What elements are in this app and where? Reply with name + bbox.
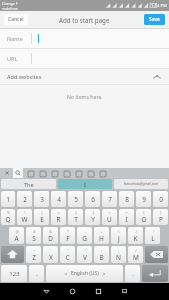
button[interactable]: English (US) bbox=[46, 265, 123, 282]
staticText: I bbox=[125, 215, 128, 224]
button[interactable]: Close toolbar bbox=[3, 169, 11, 177]
button[interactable]: Hide keyboard bbox=[111, 283, 137, 300]
staticText: @ bbox=[15, 229, 19, 234]
button[interactable]: I bbox=[58, 179, 112, 189]
button[interactable]: Emoji bbox=[62, 169, 71, 178]
staticText: Q bbox=[5, 215, 11, 224]
staticText: O bbox=[141, 215, 147, 224]
button[interactable]: 8 bbox=[119, 191, 134, 207]
button[interactable]: Name bbox=[0, 29, 169, 48]
button[interactable]: + bbox=[94, 227, 109, 244]
button[interactable]: ` bbox=[43, 246, 58, 263]
button[interactable]: 1 bbox=[1, 191, 15, 207]
staticText: 0 bbox=[159, 195, 163, 204]
button[interactable]: 4 bbox=[51, 191, 66, 207]
button[interactable]: ( bbox=[111, 227, 126, 244]
button[interactable]: fatoumata@gmail.com bbox=[114, 179, 168, 189]
button[interactable]: ' bbox=[77, 246, 92, 263]
staticText: ! bbox=[153, 229, 154, 234]
staticText: ] bbox=[92, 210, 94, 215]
staticText: Cancel bbox=[8, 16, 24, 23]
staticText: Z bbox=[32, 253, 36, 262]
button[interactable]: " bbox=[60, 246, 75, 263]
staticText: ` bbox=[50, 248, 52, 253]
button[interactable]: Settings bbox=[98, 169, 107, 178]
staticText: \ bbox=[24, 210, 26, 215]
button[interactable]: Home bbox=[59, 283, 85, 300]
staticText: " bbox=[67, 248, 69, 253]
button[interactable]: Enter bbox=[142, 265, 168, 282]
staticText: * bbox=[67, 229, 69, 234]
button[interactable]: < bbox=[102, 209, 117, 225]
staticText: T bbox=[74, 215, 78, 224]
staticText: Name bbox=[7, 35, 31, 42]
staticText: , bbox=[36, 270, 38, 278]
button[interactable]: ; bbox=[111, 246, 126, 263]
button[interactable]: / bbox=[128, 246, 143, 263]
button[interactable]: @ bbox=[9, 227, 24, 244]
button[interactable]: Recents bbox=[85, 283, 111, 300]
button[interactable]: # bbox=[26, 227, 41, 244]
button[interactable]: [ bbox=[68, 209, 83, 225]
button[interactable]: Back bbox=[33, 283, 59, 300]
button[interactable]: 123 bbox=[1, 265, 27, 282]
button[interactable]: Theme bbox=[74, 169, 83, 178]
button[interactable]: Add websites bbox=[0, 69, 169, 84]
button[interactable]: Search bbox=[13, 168, 23, 178]
button[interactable]: } bbox=[153, 209, 168, 225]
button[interactable]: - bbox=[77, 227, 92, 244]
staticText: | bbox=[41, 210, 43, 215]
staticText: 5 bbox=[74, 195, 78, 204]
staticText: G bbox=[82, 234, 87, 243]
button[interactable]: * bbox=[60, 227, 75, 244]
button[interactable]: ! bbox=[145, 227, 160, 244]
button[interactable]: ] bbox=[85, 209, 100, 225]
button[interactable]: | bbox=[34, 209, 49, 225]
button[interactable]: ) bbox=[128, 227, 143, 244]
staticText: fatoumata@gmail.com bbox=[124, 182, 159, 186]
button[interactable]: Save bbox=[144, 14, 165, 25]
staticText: > bbox=[125, 210, 128, 215]
button[interactable]: 6 bbox=[85, 191, 100, 207]
button[interactable]: { bbox=[136, 209, 151, 225]
staticText: vodafone bbox=[2, 6, 18, 11]
button[interactable]: 2 bbox=[17, 191, 32, 207]
button[interactable]: Sticker bbox=[26, 169, 35, 178]
staticText: R bbox=[56, 215, 61, 224]
button[interactable]: & bbox=[43, 227, 58, 244]
button[interactable]: 3 bbox=[34, 191, 49, 207]
button[interactable]: > bbox=[119, 209, 134, 225]
staticText: ( bbox=[118, 229, 120, 234]
button[interactable]: 7 bbox=[102, 191, 117, 207]
staticText: 2 bbox=[23, 195, 27, 204]
button[interactable]: The bbox=[1, 179, 56, 189]
button[interactable]: Cancel bbox=[4, 14, 28, 25]
staticText: U bbox=[107, 215, 112, 224]
button[interactable]: 0 bbox=[153, 191, 168, 207]
button[interactable]: 5 bbox=[68, 191, 83, 207]
staticText: ~ bbox=[33, 248, 36, 253]
button[interactable]: : bbox=[94, 246, 109, 263]
button[interactable]: URL bbox=[0, 49, 169, 68]
staticText: A bbox=[14, 234, 19, 243]
button[interactable]: Shift bbox=[1, 246, 24, 263]
staticText: 1:14 PM bbox=[151, 3, 167, 9]
staticText: V bbox=[83, 253, 87, 262]
button[interactable]: \ bbox=[17, 209, 32, 225]
staticText: ' bbox=[85, 248, 86, 253]
button[interactable]: Backspace bbox=[145, 246, 168, 263]
staticText: F bbox=[66, 234, 70, 243]
staticText: 6 bbox=[91, 195, 95, 204]
button[interactable]: 9 bbox=[136, 191, 151, 207]
button[interactable]: = bbox=[51, 209, 66, 225]
button[interactable]: % bbox=[1, 209, 15, 225]
button[interactable]: ~ bbox=[26, 246, 41, 263]
staticText: English (US) bbox=[71, 270, 99, 277]
staticText: = bbox=[57, 210, 60, 215]
button[interactable]: Voice bbox=[86, 169, 95, 178]
button[interactable]: Translate bbox=[38, 169, 47, 178]
button[interactable]: , bbox=[29, 265, 44, 282]
button[interactable]: Clipboard bbox=[50, 169, 59, 178]
staticText: No items here. bbox=[67, 93, 103, 100]
button[interactable]: . bbox=[125, 265, 140, 282]
